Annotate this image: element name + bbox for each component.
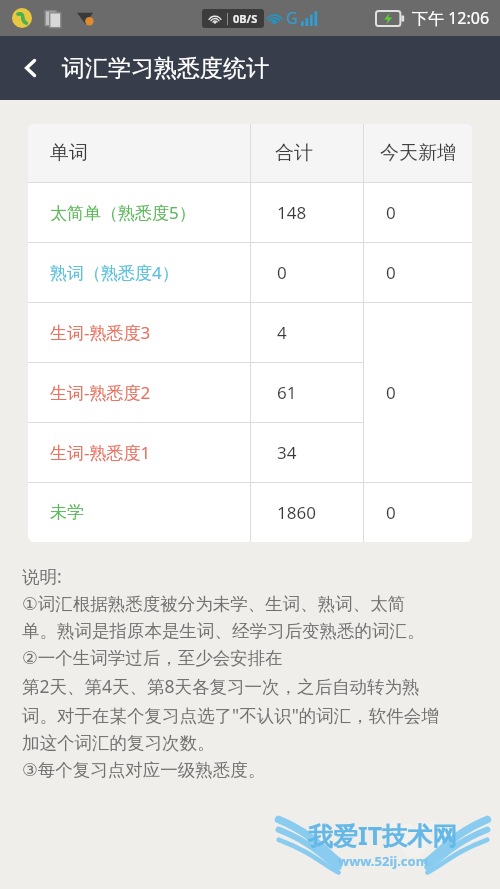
staticText: ①词汇根据熟悉度被分为未学、生词、熟词、太简: [22, 593, 406, 615]
staticText: 生词-熟悉度1: [50, 441, 151, 464]
staticText: 148: [277, 201, 307, 224]
staticText: 生词-熟悉度3: [50, 321, 151, 344]
staticText: 加这个词汇的复习次数。: [22, 732, 215, 754]
staticText: 0: [386, 201, 396, 224]
staticText: 生词-熟悉度2: [50, 381, 151, 404]
staticText: 下午 12:06: [412, 7, 490, 29]
staticText: 说明:: [22, 564, 62, 588]
staticText: 未学: [50, 502, 84, 523]
staticText: 0: [386, 261, 396, 284]
staticText: 词。对于在某个复习点选了"不认识"的词汇，软件会增: [22, 703, 439, 727]
staticText: 词汇学习熟悉度统计: [62, 54, 269, 83]
staticText: 0: [277, 261, 287, 284]
staticText: 我爱IT技术网: [308, 818, 458, 852]
button[interactable]: Back: [0, 36, 62, 100]
staticText: 熟词（熟悉度4）: [50, 261, 179, 284]
staticText: 1860: [277, 501, 316, 524]
staticText: 34: [277, 441, 297, 464]
staticText: 今天新增: [380, 141, 456, 165]
staticText: 61: [277, 381, 297, 404]
staticText: 单。熟词是指原本是生词、经学习后变熟悉的词汇。: [22, 620, 425, 642]
staticText: 合计: [275, 141, 313, 165]
staticText: 第2天、第4天、第8天各复习一次，之后自动转为熟: [22, 674, 420, 698]
staticText: 4: [277, 321, 287, 344]
staticText: ③每个复习点对应一级熟悉度。: [22, 759, 266, 781]
staticText: 0: [386, 501, 396, 524]
staticText: 0: [386, 381, 396, 404]
staticText: 太简单（熟悉度5）: [50, 201, 196, 224]
staticText: 单词: [50, 141, 88, 165]
staticText: G: [286, 7, 298, 29]
staticText: 0B/S: [233, 11, 258, 26]
staticText: ②一个生词学过后，至少会安排在: [22, 647, 283, 669]
staticText: www.52ij.com: [338, 852, 429, 870]
